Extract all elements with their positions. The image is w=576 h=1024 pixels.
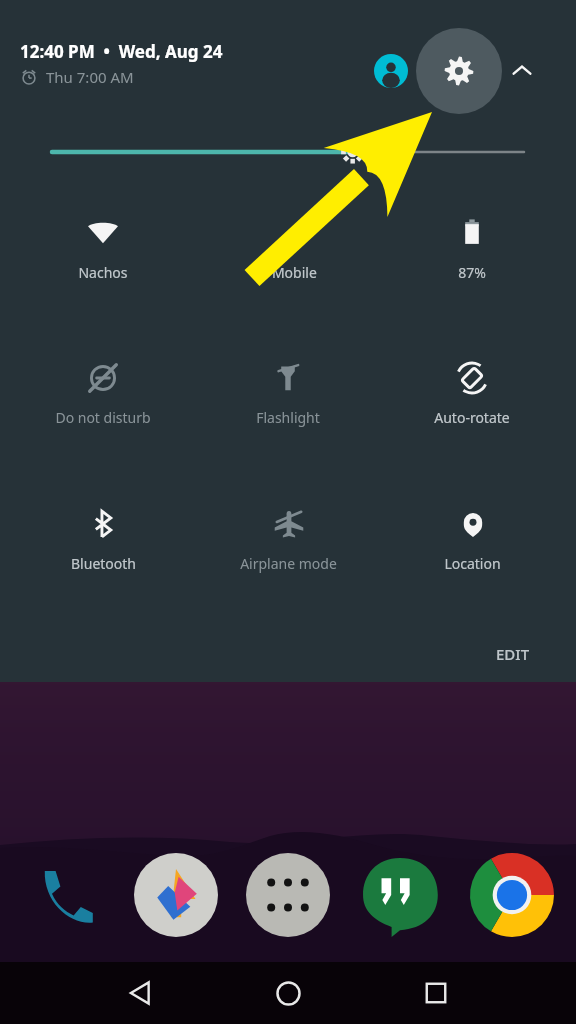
staticText: Flashlight: [256, 408, 320, 427]
button[interactable]: Airplane mode: [203, 504, 373, 614]
staticText: EDIT: [496, 644, 530, 664]
button[interactable]: Nachos: [18, 213, 188, 323]
staticText: 12:40 PM • Wed, Aug 24: [20, 40, 223, 63]
button[interactable]: EDIT: [470, 632, 556, 676]
button[interactable]: Hangouts: [358, 853, 442, 937]
button[interactable]: Bluetooth: [18, 504, 188, 614]
button[interactable]: Auto-rotate: [387, 358, 557, 468]
button[interactable]: Recents: [394, 962, 478, 1024]
button[interactable]: Location: [387, 504, 557, 614]
staticText: Auto-rotate: [434, 408, 510, 427]
staticText: Bluetooth: [71, 554, 136, 573]
staticText: Location: [444, 554, 501, 573]
staticText: T-Mobile: [260, 263, 317, 282]
button[interactable]: Do not disturb: [18, 358, 188, 468]
staticText: Thu 7:00 AM: [46, 67, 134, 87]
button[interactable]: Phone: [22, 853, 106, 937]
button[interactable]: Collapse: [502, 51, 542, 91]
button[interactable]: Chrome: [470, 853, 554, 937]
button[interactable]: [52, 132, 524, 172]
staticText: Nachos: [78, 263, 128, 282]
staticText: Airplane mode: [240, 554, 337, 573]
button[interactable]: User: [366, 46, 416, 96]
button[interactable]: All apps: [246, 853, 330, 937]
staticText: Do not disturb: [55, 408, 151, 427]
button[interactable]: Settings: [416, 28, 502, 114]
button[interactable]: Photos: [134, 853, 218, 937]
button[interactable]: 87%: [387, 213, 557, 323]
button[interactable]: Back: [98, 962, 182, 1024]
button[interactable]: Flashlight: [203, 358, 373, 468]
button[interactable]: T-Mobile: [203, 213, 373, 323]
staticText: 87%: [458, 263, 486, 282]
button[interactable]: Home: [246, 962, 330, 1024]
